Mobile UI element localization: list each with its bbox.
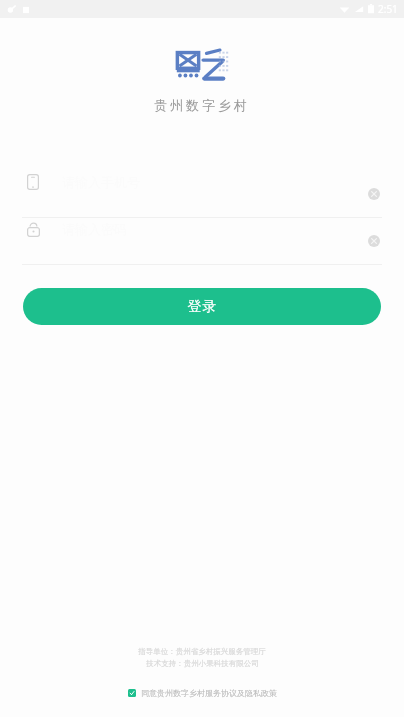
staticText: 同意贵州数字乡村服务协议及隐私政策 <box>141 688 277 698</box>
staticText: 指导单位：贵州省乡村振兴服务管理厅 <box>138 647 266 656</box>
other: Phone <box>22 171 44 193</box>
button[interactable]: Clear <box>364 184 384 204</box>
staticText: 2:51 <box>378 2 398 16</box>
button[interactable]: 同意贵州数字乡村服务协议及隐私政策 <box>124 685 281 701</box>
staticText: 登录 <box>187 298 217 316</box>
button[interactable]: Phone <box>0 171 404 217</box>
staticText: 技术支持：贵州小果科技有限公司 <box>146 659 259 668</box>
button[interactable]: Password <box>0 218 404 264</box>
button[interactable]: 登录 <box>23 288 381 325</box>
button[interactable]: Clear <box>364 231 384 251</box>
other: Password <box>22 218 44 240</box>
staticText: 贵州数字乡村 <box>0 97 404 113</box>
